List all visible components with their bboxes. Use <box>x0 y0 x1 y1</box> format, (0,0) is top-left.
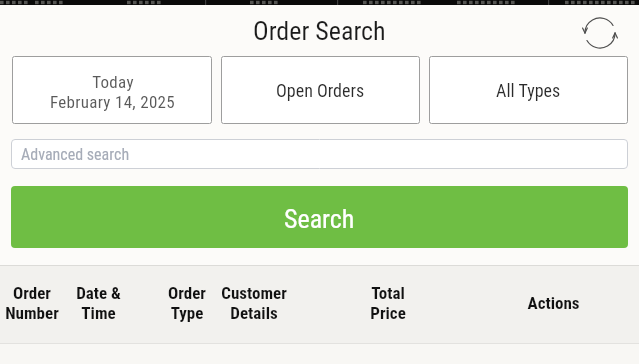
staticText: Today <box>92 72 134 92</box>
staticText: Total Price <box>370 283 406 323</box>
staticText: Customer Details <box>221 283 287 323</box>
staticText: Date & Time <box>76 283 121 323</box>
button[interactable]: All Types <box>429 56 628 124</box>
staticText: Open Orders <box>276 80 365 101</box>
button[interactable]: Open Orders <box>221 56 420 124</box>
staticText: February 14, 2025 <box>50 92 175 112</box>
staticText: Advanced search <box>21 145 130 164</box>
button[interactable]: Today <box>12 56 212 124</box>
button[interactable]: Search <box>11 186 628 248</box>
staticText: Order Search <box>253 16 386 46</box>
staticText: Order Type <box>168 283 206 323</box>
button[interactable]: Advanced search <box>11 139 628 169</box>
staticText: Actions <box>527 293 580 313</box>
staticText: All Types <box>496 80 561 101</box>
staticText: Search <box>284 204 355 234</box>
staticText: Order Number <box>5 283 59 323</box>
button[interactable] <box>584 17 616 49</box>
